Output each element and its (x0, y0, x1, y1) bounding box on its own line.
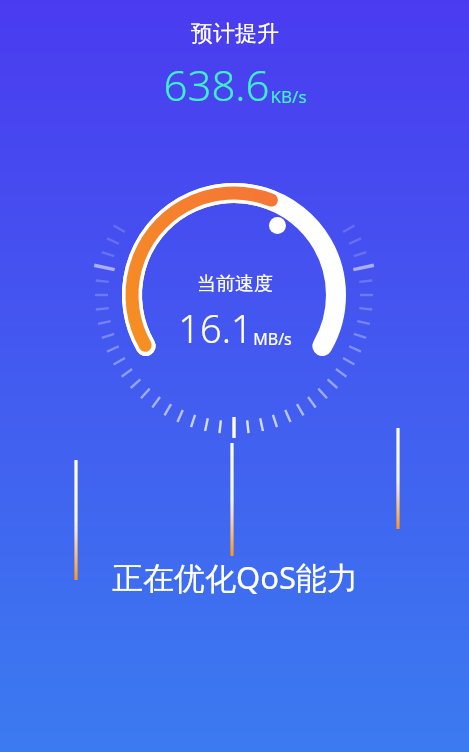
staticText: 预计提升 (191, 20, 279, 48)
staticText: 正在优化QoS能力 (112, 556, 358, 598)
staticText: 当前速度 (197, 272, 273, 296)
staticText: 638.6 (163, 56, 270, 113)
staticText: KB/s (270, 85, 307, 108)
staticText: 16.1 (178, 302, 253, 354)
staticText: MB/s (253, 328, 292, 350)
button[interactable]: Speed gauge (0, 0, 469, 752)
